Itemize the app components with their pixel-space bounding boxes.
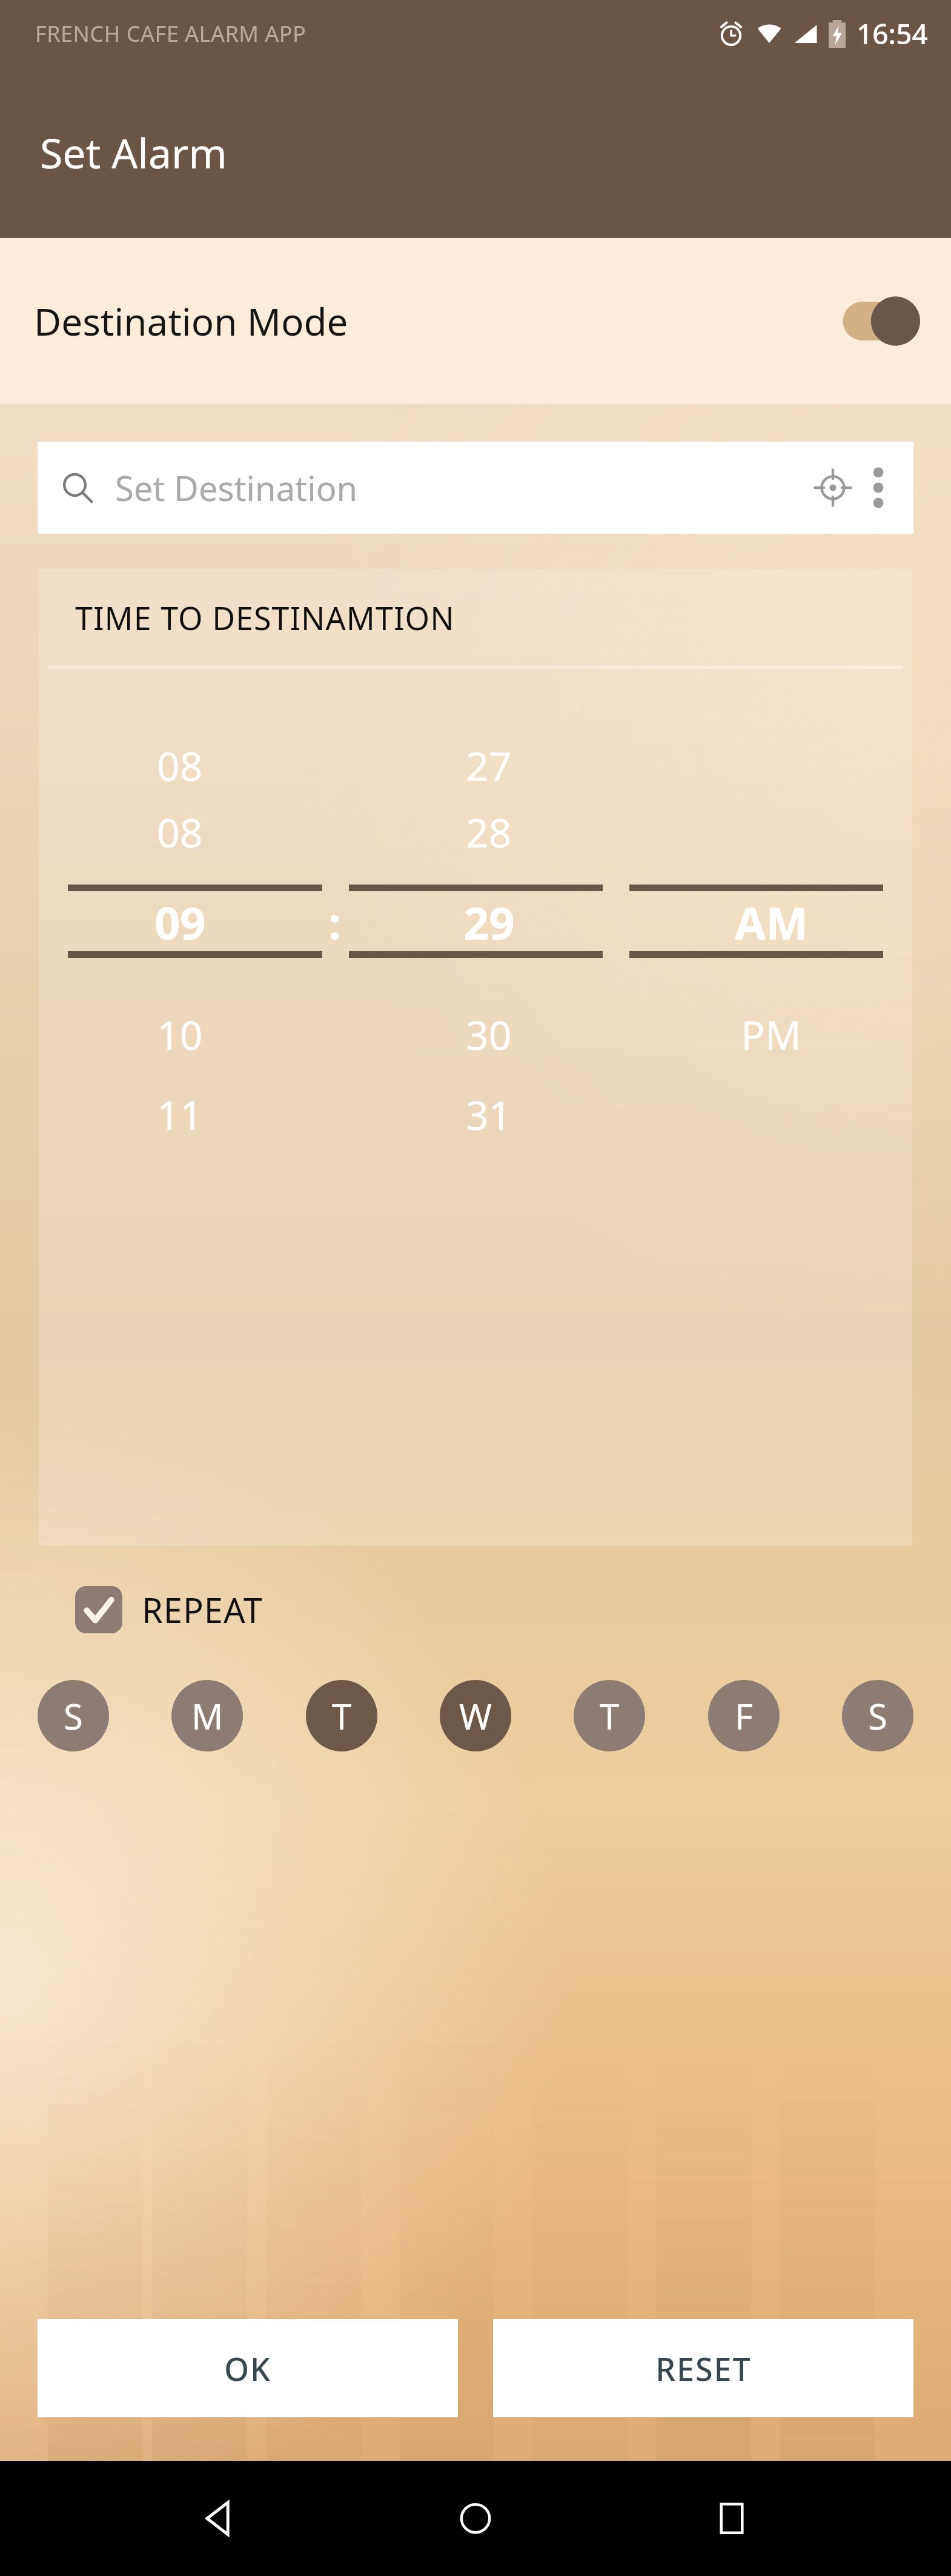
staticText: 10 (157, 1007, 203, 1061)
button[interactable]: M (171, 1680, 243, 1751)
staticText: T (332, 1692, 352, 1740)
staticText: FRENCH CAFE ALARM APP (35, 19, 307, 48)
button[interactable]: Set Destination (38, 442, 913, 534)
staticText: REPEAT (142, 1587, 263, 1633)
staticText: 30 (466, 1007, 512, 1061)
staticText: 08 (157, 738, 203, 792)
staticText: T (600, 1692, 620, 1740)
staticText: F (735, 1692, 754, 1740)
button[interactable]: S (842, 1680, 913, 1751)
button[interactable]: T (306, 1680, 377, 1751)
staticText: M (191, 1692, 224, 1740)
staticText: S (64, 1692, 83, 1740)
staticText: Set Alarm (40, 124, 227, 181)
staticText: : (328, 892, 341, 952)
staticText: W (459, 1692, 492, 1740)
staticText: 08 (157, 805, 203, 859)
staticText: Set Destination (115, 465, 807, 511)
button[interactable]: Destination Mode (0, 238, 951, 404)
button[interactable]: S (38, 1680, 109, 1751)
button[interactable]: T (574, 1680, 645, 1751)
staticText: Destination Mode (34, 296, 348, 347)
staticText: S (868, 1692, 887, 1740)
button[interactable]: W (440, 1680, 511, 1751)
staticText: RESET (655, 2347, 752, 2390)
button[interactable]: Recents (695, 2482, 768, 2555)
staticText: PM (741, 1007, 801, 1061)
button[interactable]: REPEAT (75, 1579, 263, 1640)
staticText: 28 (466, 805, 512, 859)
button[interactable]: OK (38, 2319, 458, 2417)
button[interactable]: Back (184, 2482, 256, 2555)
button[interactable]: Home (439, 2482, 512, 2555)
button[interactable]: 09 (39, 892, 912, 952)
button[interactable]: My location (807, 462, 859, 514)
staticText: AM (735, 892, 808, 952)
staticText: 31 (466, 1087, 512, 1141)
staticText: 11 (157, 1087, 203, 1141)
button[interactable]: RESET (493, 2319, 913, 2417)
button[interactable]: Destination Mode toggle (840, 288, 924, 354)
staticText: 27 (466, 738, 512, 792)
staticText: OK (224, 2347, 271, 2390)
button[interactable]: F (708, 1680, 780, 1751)
staticText: TIME TO DESTINAMTION (75, 596, 455, 639)
staticText: 16:54 (857, 15, 928, 53)
staticText: 09 (154, 892, 206, 952)
button[interactable]: More options (859, 462, 898, 514)
staticText: 29 (463, 892, 515, 952)
